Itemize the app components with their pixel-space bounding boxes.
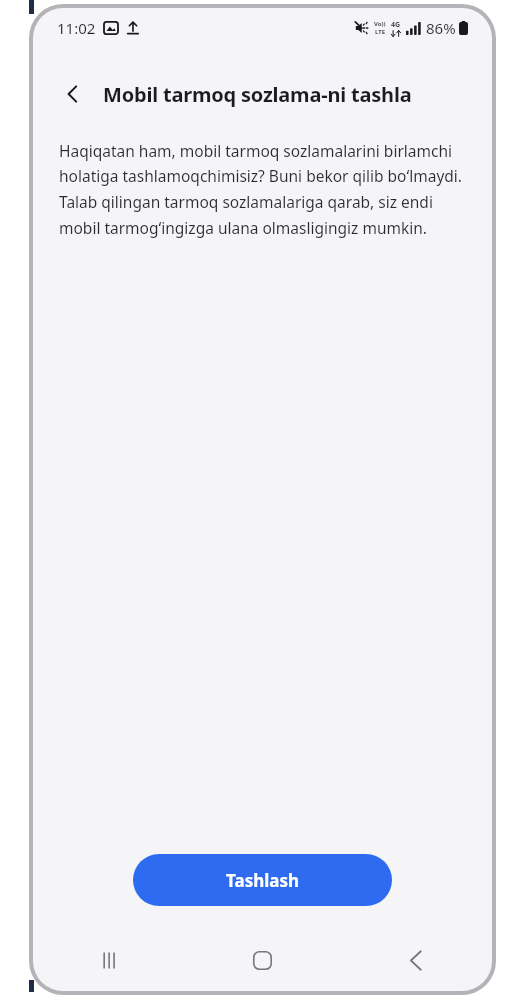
staticText: Mobil tarmoq sozlama-ni tashla (103, 81, 412, 108)
button[interactable]: Tashlash (133, 854, 392, 906)
staticText: Haqiqatan ham, mobil tarmoq sozlamalarin… (59, 140, 468, 239)
staticText: Tashlash (226, 869, 300, 892)
button[interactable]: Recent apps (33, 937, 186, 983)
button[interactable]: Back (51, 72, 95, 116)
staticText: 11:02 (57, 18, 96, 38)
staticText: 86% (426, 18, 456, 38)
button[interactable]: Home (186, 937, 339, 983)
staticText: LTE (375, 28, 386, 36)
button[interactable]: Back (339, 937, 492, 983)
staticText: 4G (391, 20, 401, 30)
staticText: Vo)) (374, 20, 386, 28)
